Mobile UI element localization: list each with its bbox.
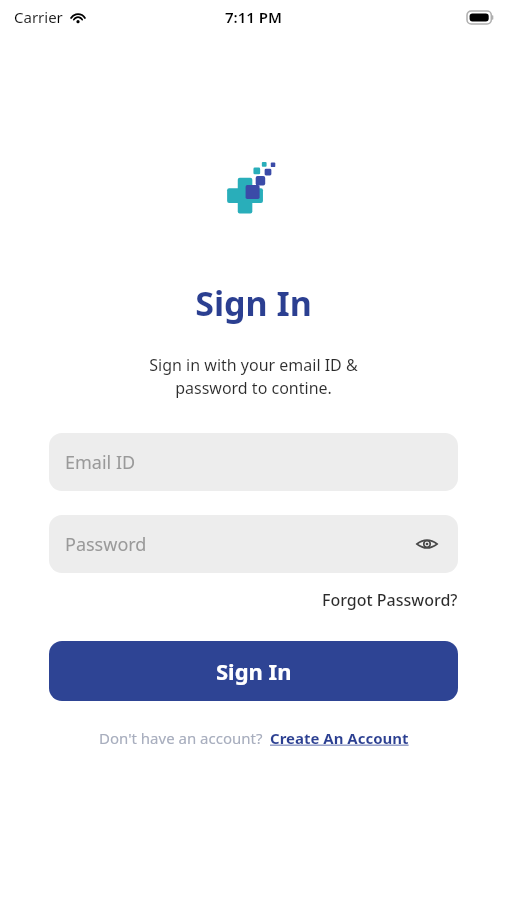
staticText: Email ID — [65, 450, 136, 475]
staticText: 7:11 PM — [225, 7, 282, 27]
button[interactable]: Show password — [412, 529, 442, 559]
staticText: Password — [65, 532, 147, 557]
staticText: Forgot Password? — [322, 589, 458, 611]
staticText: Sign in with your email ID & password to… — [0, 354, 507, 399]
staticText: Carrier — [14, 7, 63, 27]
staticText: Sign In — [216, 656, 292, 686]
staticText: Don't have an account? — [99, 728, 263, 748]
staticText: Create An Account — [270, 728, 409, 748]
staticText: Sign In — [0, 280, 507, 326]
button[interactable]: Forgot Password? — [322, 585, 458, 615]
button[interactable]: Password — [49, 515, 458, 573]
button[interactable]: Email ID — [49, 433, 458, 491]
button[interactable]: Sign In — [49, 641, 458, 701]
button[interactable]: Create An Account — [270, 728, 409, 748]
